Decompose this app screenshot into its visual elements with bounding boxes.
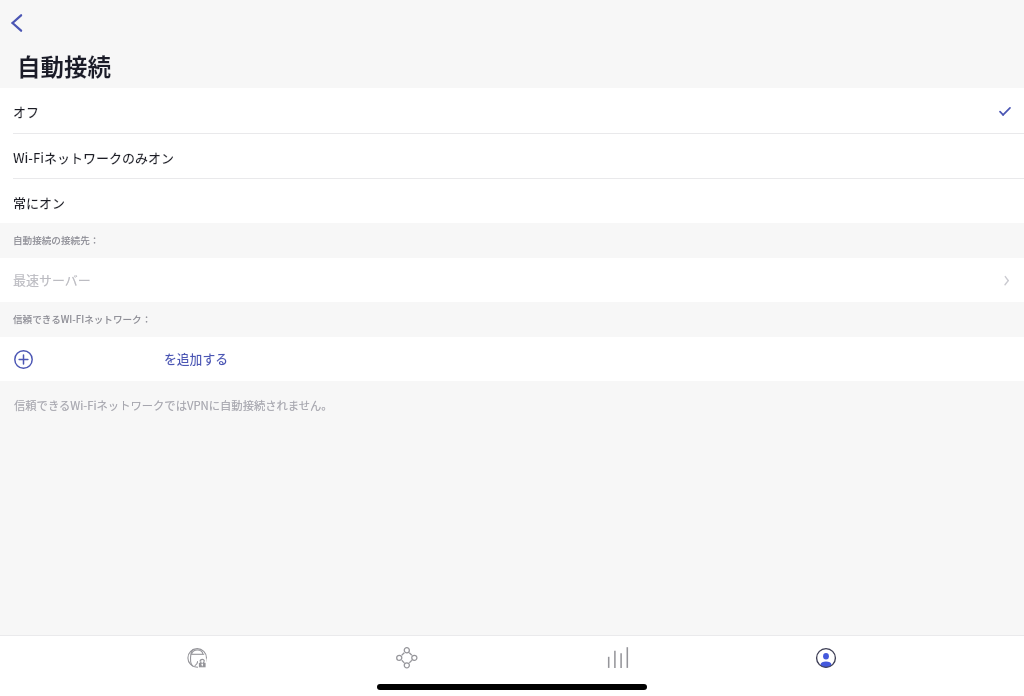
- button[interactable]: Wi-Fiネットワークのみオン: [0, 134, 1024, 178]
- button[interactable]: を追加する: [0, 337, 1024, 381]
- button[interactable]: VPN connection: [93, 636, 302, 680]
- staticText: 自動接続: [17, 49, 111, 83]
- button[interactable]: Account: [721, 636, 931, 680]
- staticText: オフ: [13, 102, 40, 121]
- staticText: を追加する: [164, 349, 228, 368]
- staticText: 自動接続の接続先：: [13, 233, 100, 247]
- button[interactable]: オフ: [0, 88, 1024, 133]
- button[interactable]: Statistics: [511, 636, 721, 680]
- staticText: Wi-Fiネットワークのみオン: [13, 148, 175, 167]
- staticText: 常にオン: [13, 193, 66, 212]
- staticText: 信頼できるWI-FIネットワーク：: [13, 312, 152, 326]
- button[interactable]: Back: [0, 5, 36, 41]
- staticText: 最速サーバー: [13, 270, 91, 289]
- button[interactable]: Network: [302, 636, 511, 680]
- staticText: 信頼できるWi-FiネットワークではVPNに自動接続されません。: [14, 397, 333, 413]
- button[interactable]: 最速サーバー: [0, 258, 1024, 302]
- button[interactable]: 常にオン: [0, 179, 1024, 223]
